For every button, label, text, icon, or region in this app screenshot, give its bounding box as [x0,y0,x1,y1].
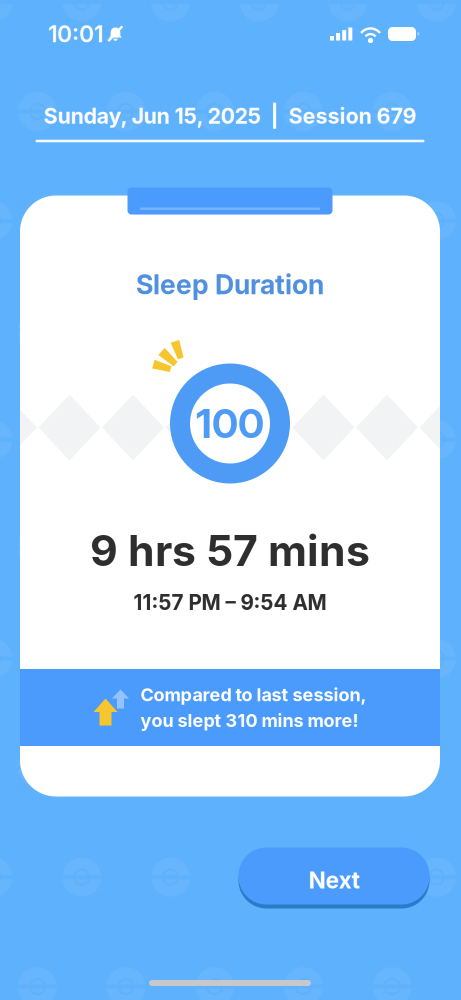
staticText: 11:57 PM – 9:54 AM [133,590,326,615]
button[interactable]: Next [238,845,429,906]
staticText: 9 hrs 57 mins [90,525,370,576]
staticText: Compared to last session, [140,684,366,705]
staticText: 100 [196,399,264,448]
button[interactable]: Time, silent mode on [48,20,124,48]
staticText: Sunday, Jun 15, 2025 | Session 679 [43,103,416,129]
staticText: 10:01 [48,20,103,48]
staticText: Sleep Duration [136,268,324,301]
staticText: you slept 310 mins more! [140,709,358,731]
staticText: Next [308,866,359,894]
